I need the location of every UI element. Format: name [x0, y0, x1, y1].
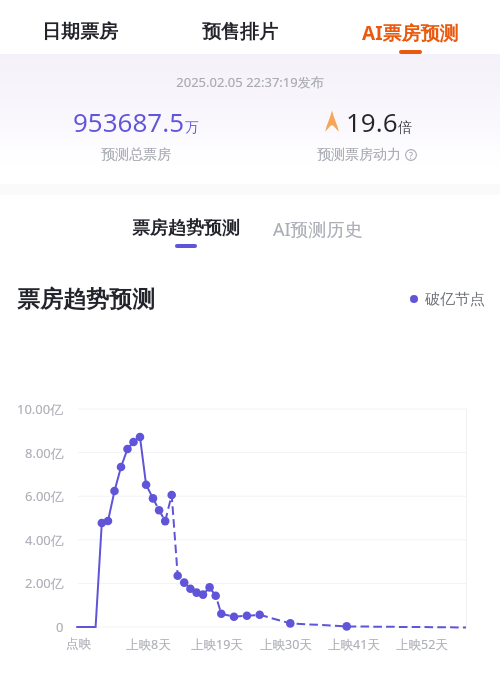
staticText: 票房趋势预测 [17, 285, 155, 314]
staticText: 上映52天 [396, 636, 448, 653]
staticText: 4.00亿 [25, 531, 64, 549]
staticText: 8.00亿 [25, 444, 64, 462]
staticText: 19.6 [346, 104, 398, 139]
staticText: 预售排片 [202, 20, 278, 44]
staticText: 上映41天 [328, 636, 380, 653]
staticText: 上映8天 [126, 636, 171, 653]
button[interactable]: AI票房预测 [362, 0, 459, 54]
staticText: 2025.02.05 22:37:19发布 [0, 73, 500, 91]
staticText: AI票房预测 [362, 20, 459, 46]
button[interactable]: 票房趋势预测 [124, 195, 248, 248]
staticText: AI预测历史 [273, 217, 363, 242]
button[interactable]: AI预测历史 [265, 195, 371, 250]
staticText: 2.00亿 [25, 574, 64, 592]
staticText: 倍 [398, 119, 412, 137]
staticText: 上映30天 [260, 636, 312, 653]
button[interactable]: 预售排片 [202, 0, 278, 54]
staticText: 点映 [66, 636, 91, 652]
staticText: 万 [185, 119, 199, 137]
staticText: 票房趋势预测 [132, 217, 240, 240]
button[interactable]: 日期票房 [42, 0, 118, 54]
staticText: 0 [56, 618, 64, 636]
staticText: 上映19天 [191, 636, 243, 653]
staticText: 953687.5 [73, 104, 185, 139]
staticText: 预测总票房 [101, 146, 171, 164]
staticText: ? [409, 149, 413, 161]
staticText: 日期票房 [42, 20, 118, 44]
button[interactable]: 说明 [405, 149, 417, 161]
staticText: 6.00亿 [25, 487, 64, 505]
staticText: 破亿节点 [425, 290, 485, 309]
staticText: 预测票房动力 [317, 146, 401, 164]
staticText: 10.00亿 [17, 400, 64, 418]
